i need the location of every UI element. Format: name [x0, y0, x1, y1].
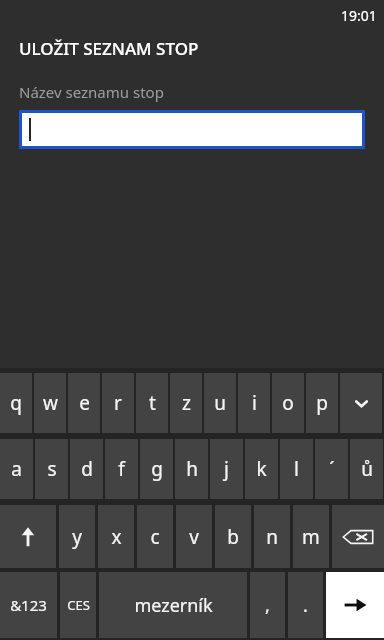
staticText: q — [10, 390, 22, 416]
button[interactable]: j — [210, 439, 243, 499]
staticText: n — [266, 524, 278, 550]
staticText: i — [252, 390, 257, 416]
button[interactable]: z — [170, 373, 202, 433]
staticText: ů — [361, 456, 373, 482]
button[interactable]: b — [215, 505, 251, 568]
staticText: c — [150, 524, 160, 550]
button[interactable]: u — [204, 373, 236, 433]
button[interactable]: t — [136, 373, 168, 433]
button[interactable]: &123 — [0, 572, 57, 638]
button[interactable]: i — [238, 373, 270, 433]
button[interactable]: x — [98, 505, 134, 568]
staticText: h — [186, 456, 198, 482]
button[interactable]: d — [70, 439, 103, 499]
staticText: p — [316, 390, 328, 416]
button[interactable]: Shift — [0, 505, 56, 568]
staticText: r — [114, 390, 122, 416]
staticText: ´ — [329, 456, 335, 482]
staticText: mezerník — [134, 593, 213, 618]
staticText: , — [265, 593, 270, 618]
button[interactable]: p — [306, 373, 338, 433]
button[interactable]: Enter — [326, 572, 384, 638]
button[interactable]: r — [102, 373, 134, 433]
staticText: b — [227, 524, 239, 550]
button[interactable]: l — [280, 439, 313, 499]
button[interactable]: ´ — [315, 439, 348, 499]
staticText: m — [302, 524, 320, 550]
button[interactable]: , — [250, 572, 285, 638]
button[interactable] — [19, 110, 365, 149]
button[interactable]: q — [0, 373, 32, 433]
staticText: u — [214, 390, 226, 416]
staticText: Název seznamu stop — [19, 82, 164, 102]
button[interactable]: g — [140, 439, 173, 499]
button[interactable]: c — [137, 505, 173, 568]
button[interactable]: s — [35, 439, 68, 499]
staticText: f — [118, 456, 125, 482]
staticText: CES — [67, 596, 90, 614]
staticText: z — [182, 390, 191, 416]
staticText: x — [111, 524, 122, 550]
staticText: w — [43, 390, 58, 416]
staticText: g — [151, 456, 163, 482]
button[interactable]: ů — [350, 439, 383, 499]
button[interactable]: w — [34, 373, 66, 433]
button[interactable]: o — [272, 373, 304, 433]
staticText: t — [149, 390, 156, 416]
button[interactable]: f — [105, 439, 138, 499]
button[interactable]: Backspace — [332, 505, 384, 568]
staticText: l — [294, 456, 299, 482]
staticText: v — [189, 524, 199, 550]
button[interactable]: h — [175, 439, 208, 499]
staticText: s — [47, 456, 57, 482]
button[interactable]: Hide keyboard — [340, 373, 382, 433]
button[interactable]: mezerník — [99, 572, 247, 638]
staticText: j — [224, 456, 229, 482]
button[interactable]: v — [176, 505, 212, 568]
button[interactable]: a — [0, 439, 33, 499]
button[interactable]: k — [245, 439, 278, 499]
button[interactable]: . — [288, 572, 323, 638]
staticText: a — [11, 456, 22, 482]
button[interactable]: y — [59, 505, 95, 568]
staticText: y — [72, 524, 82, 550]
staticText: 19:01 — [341, 6, 377, 25]
staticText: d — [81, 456, 93, 482]
staticText: o — [282, 390, 294, 416]
staticText: e — [79, 390, 90, 416]
staticText: . — [303, 593, 308, 618]
button[interactable]: CES — [60, 572, 96, 638]
staticText: k — [256, 456, 267, 482]
button[interactable]: m — [293, 505, 329, 568]
button[interactable]: n — [254, 505, 290, 568]
staticText: ULOŽIT SEZNAM STOP — [19, 37, 199, 60]
button[interactable]: e — [68, 373, 100, 433]
staticText: &123 — [10, 595, 47, 615]
